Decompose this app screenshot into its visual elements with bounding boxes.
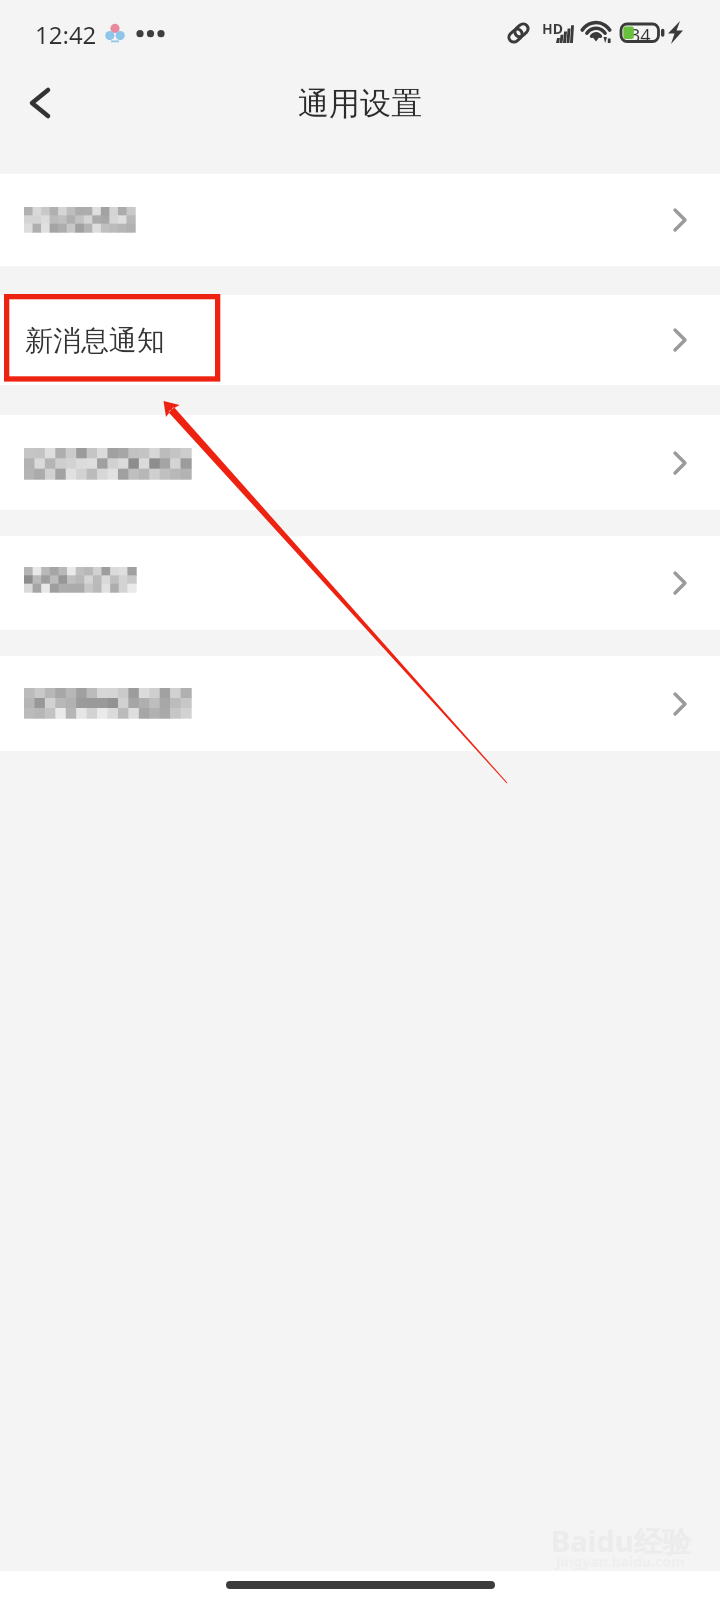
staticText: 12:42	[35, 18, 97, 51]
staticText: Baidu经验	[551, 1521, 692, 1561]
button[interactable]	[0, 536, 720, 630]
staticText: 新消息通知	[25, 323, 165, 358]
button[interactable]	[0, 656, 720, 751]
staticText: 34	[630, 23, 651, 48]
staticText: HD	[542, 19, 563, 38]
button[interactable]: 新消息通知	[0, 295, 720, 385]
staticText: 通用设置	[298, 84, 422, 123]
button[interactable]: Back	[0, 60, 80, 146]
button[interactable]	[0, 415, 720, 510]
button[interactable]	[0, 174, 720, 266]
